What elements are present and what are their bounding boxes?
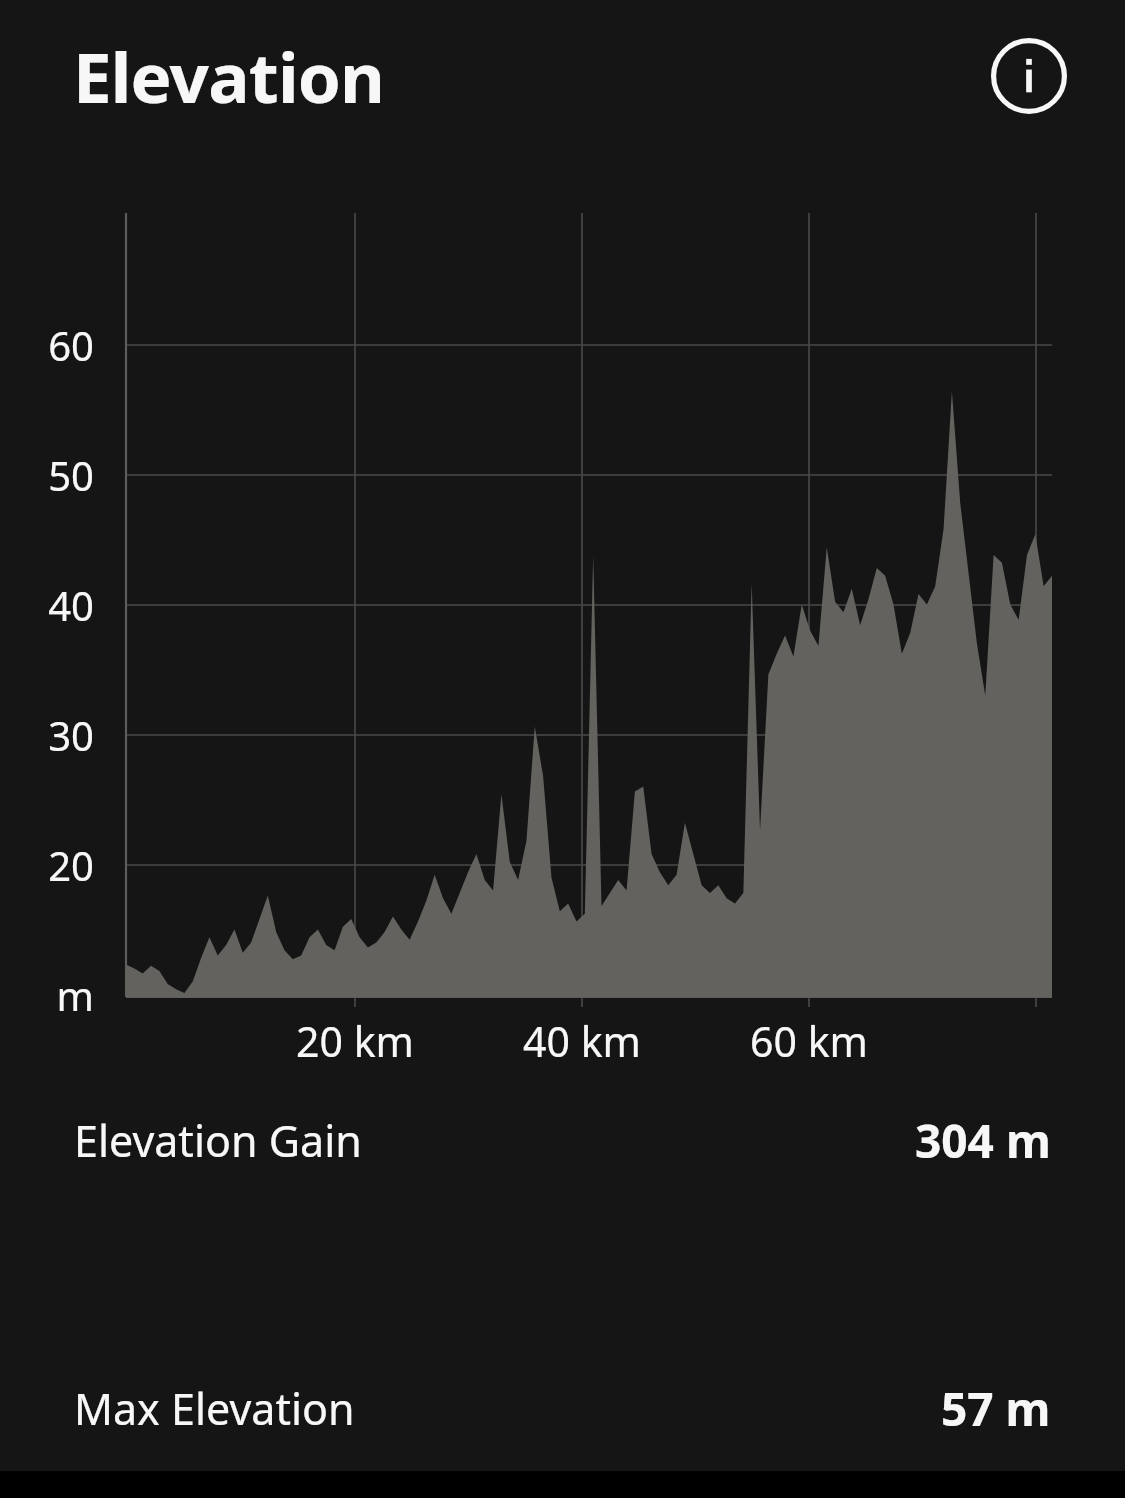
staticText: 30	[48, 708, 94, 762]
staticText: 40	[48, 578, 94, 632]
staticText: Elevation Gain	[74, 1111, 362, 1170]
button[interactable]: Elevation Gain	[0, 1092, 1125, 1188]
staticText: 50	[48, 448, 94, 502]
staticText: 60 km	[750, 1013, 868, 1069]
staticText: 304 m	[915, 1109, 1051, 1172]
staticText: Max Elevation	[74, 1379, 355, 1438]
staticText: 60	[48, 318, 94, 372]
staticText: 57 m	[941, 1377, 1051, 1440]
button[interactable]: Max Elevation	[0, 1360, 1125, 1456]
staticText: 40 km	[523, 1013, 641, 1069]
button[interactable]: Information	[991, 38, 1067, 114]
staticText: Elevation	[73, 29, 385, 123]
staticText: 20	[48, 838, 94, 892]
staticText: 20 km	[296, 1013, 414, 1069]
staticText: m	[56, 968, 94, 1022]
